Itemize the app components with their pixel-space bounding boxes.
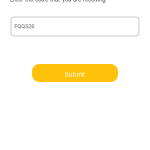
staticText: Enter the code that you are receiving: [10, 0, 106, 3]
staticText: FQQS26: [14, 23, 34, 29]
staticText: Submit: [65, 71, 85, 78]
button[interactable]: Submit: [32, 64, 118, 82]
